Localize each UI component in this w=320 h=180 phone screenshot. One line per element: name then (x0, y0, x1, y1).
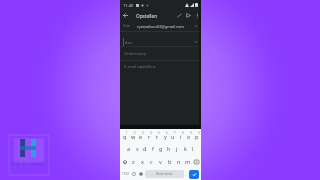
button[interactable]: n (174, 155, 183, 168)
staticText: i (180, 133, 182, 140)
staticText: e (139, 133, 143, 140)
button[interactable]: Emoji (130, 168, 137, 180)
button[interactable]: Settings (137, 168, 144, 180)
button[interactable]: k (181, 142, 189, 155)
staticText: n (177, 158, 181, 165)
button[interactable]: Nederlands (145, 170, 184, 178)
button[interactable]: o (185, 129, 193, 142)
staticText: Van (123, 23, 131, 29)
staticText: h (167, 145, 171, 152)
staticText: u (171, 133, 175, 140)
staticText: Nederlands (156, 172, 173, 176)
staticText: o (187, 133, 191, 140)
button[interactable]: b (165, 155, 174, 168)
button[interactable]: m (183, 155, 192, 168)
staticText: 3 (142, 131, 144, 135)
staticText: E-mail opstellen (124, 64, 156, 70)
staticText: ryanwilson63@gmail.com (137, 24, 194, 29)
button[interactable]: ?123 (121, 168, 130, 180)
button[interactable]: w (129, 129, 137, 142)
staticText: k (184, 145, 187, 152)
staticText: j (176, 145, 178, 152)
staticText: 8 (182, 131, 184, 135)
button[interactable]: Enter (189, 170, 199, 179)
button[interactable]: Backspace (192, 155, 201, 168)
staticText: 6 (166, 131, 168, 135)
button[interactable]: E-mail opstellen (124, 61, 198, 73)
button[interactable]: f (149, 142, 157, 155)
button[interactable]: z (129, 155, 138, 168)
staticText: t (156, 133, 158, 140)
staticText: Aan (125, 40, 133, 46)
staticText: ?123 (122, 172, 129, 176)
button[interactable]: Back (120, 10, 131, 21)
staticText: Onderwerp (124, 51, 147, 57)
button[interactable]: Attach file (175, 10, 184, 21)
staticText: q (123, 133, 127, 140)
button[interactable]: e (137, 129, 145, 142)
staticText: r (148, 133, 151, 140)
button[interactable]: Shift (120, 155, 129, 168)
staticText: c (150, 158, 153, 165)
staticText: d (143, 145, 147, 152)
button[interactable]: i (177, 129, 185, 142)
button[interactable]: x (138, 155, 147, 168)
button[interactable]: . (185, 168, 189, 180)
staticText: f (152, 145, 154, 152)
staticText: 0 (198, 131, 200, 135)
staticText: 7 (174, 131, 176, 135)
staticText: v (159, 158, 162, 165)
button[interactable]: h (165, 142, 173, 155)
staticText: m (185, 158, 191, 165)
staticText: b (168, 158, 172, 165)
staticText: . (186, 172, 188, 177)
button[interactable]: j (173, 142, 181, 155)
staticText: 1 (126, 131, 128, 135)
button[interactable]: c (147, 155, 156, 168)
button[interactable]: t (153, 129, 161, 142)
staticText: 5 (158, 131, 160, 135)
staticText: s (136, 145, 139, 152)
staticText: z (132, 158, 135, 165)
button[interactable]: a (124, 142, 133, 155)
button[interactable]: l (189, 142, 197, 155)
button[interactable]: g (157, 142, 165, 155)
staticText: 2 (134, 131, 136, 135)
staticText: 4 (150, 131, 152, 135)
staticText: x (141, 158, 144, 165)
staticText: 11:40 (123, 3, 134, 8)
button[interactable]: r (145, 129, 153, 142)
staticText: g (159, 145, 163, 152)
staticText: p (195, 133, 199, 140)
staticText: a (127, 145, 131, 152)
staticText: Opstellen (136, 13, 158, 19)
button[interactable]: p (193, 129, 201, 142)
staticText: w (131, 133, 136, 140)
button[interactable]: u (169, 129, 177, 142)
staticText: 9 (190, 131, 192, 135)
button[interactable]: q (120, 129, 129, 142)
button[interactable]: Aan (123, 34, 198, 46)
staticText: l (192, 145, 194, 152)
button[interactable]: Van (123, 21, 198, 31)
button[interactable]: More options (193, 10, 201, 21)
button[interactable]: Onderwerp (124, 47, 198, 60)
button[interactable]: s (133, 142, 141, 155)
button[interactable]: y (161, 129, 169, 142)
staticText: y (164, 133, 167, 140)
button[interactable]: Send (184, 10, 193, 21)
button[interactable]: d (141, 142, 149, 155)
button[interactable]: v (156, 155, 165, 168)
